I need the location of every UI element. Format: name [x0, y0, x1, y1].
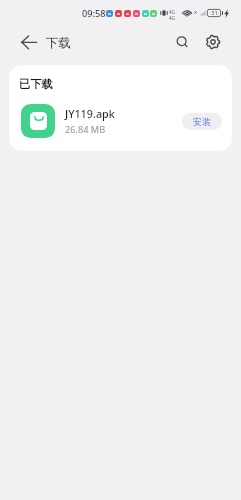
staticText: 安装 [193, 116, 211, 127]
staticText: 09:58 [82, 7, 106, 20]
staticText: JY119.apk [65, 106, 115, 121]
staticText: 31 [211, 9, 218, 17]
button[interactable]: Back [13, 26, 45, 58]
button[interactable]: Search [168, 27, 198, 57]
staticText: 下载 [46, 35, 71, 51]
button[interactable]: 安装 [182, 113, 222, 130]
staticText: 4G [169, 9, 175, 15]
staticText: 已下载 [19, 77, 53, 91]
button[interactable]: JY119.apk [9, 98, 232, 144]
staticText: 4G [169, 15, 175, 21]
staticText: x [194, 8, 197, 15]
staticText: 26.84 MB [65, 123, 106, 136]
button[interactable]: Settings [198, 27, 228, 57]
